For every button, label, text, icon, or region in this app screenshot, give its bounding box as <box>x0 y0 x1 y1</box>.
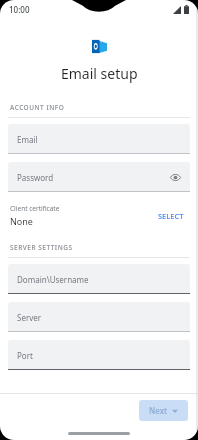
button[interactable]: SELECT <box>154 207 188 225</box>
staticText: None <box>10 215 33 227</box>
button[interactable]: Next <box>139 400 188 421</box>
button[interactable]: Password <box>8 162 190 192</box>
button[interactable]: Show password <box>168 170 182 184</box>
staticText: Email <box>17 134 38 145</box>
staticText: Password <box>17 172 54 183</box>
staticText: Email setup <box>61 64 138 83</box>
staticText: 10:00 <box>9 4 30 15</box>
button[interactable]: Domain\Username <box>8 264 190 294</box>
staticText: ACCOUNT INFO <box>10 103 65 112</box>
button[interactable]: Server <box>8 302 190 332</box>
staticText: Server <box>17 312 42 323</box>
button[interactable]: Port <box>8 340 190 370</box>
button[interactable]: Email <box>8 124 190 154</box>
staticText: Client certificate <box>10 204 60 213</box>
button[interactable]: Client certificate <box>0 202 198 229</box>
staticText: Port <box>17 350 33 361</box>
staticText: SERVER SETTINGS <box>10 243 73 252</box>
staticText: Domain\Username <box>17 274 89 285</box>
staticText: Next <box>149 405 168 416</box>
